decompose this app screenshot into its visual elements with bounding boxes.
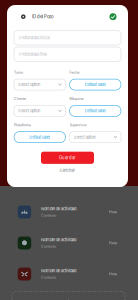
button[interactable]: Default label — [69, 105, 121, 116]
staticText: Cliente — [14, 97, 26, 101]
button[interactable]: Nombre de actividad — [0, 227, 138, 258]
staticText: Profundidad inicial — [19, 35, 50, 40]
staticText: Default label — [85, 82, 106, 87]
button[interactable]: Profundidad final — [14, 47, 121, 61]
staticText: Guardar — [59, 155, 76, 160]
button[interactable]: Nombre de actividad — [0, 196, 138, 227]
button[interactable]: Default label — [14, 132, 65, 143]
button[interactable]: Cancelar — [7, 168, 128, 173]
button[interactable]: Select option — [69, 132, 121, 143]
staticText: Hora — [109, 272, 117, 276]
staticText: Contexto — [41, 213, 56, 218]
staticText: Nombre de actividad — [41, 237, 76, 242]
staticText: Plataforma — [14, 123, 31, 127]
staticText: Profundidad final — [19, 52, 47, 57]
staticText: Hora — [109, 241, 117, 245]
staticText: Fecha — [69, 70, 79, 74]
staticText: Contexto — [41, 275, 56, 280]
staticText: Turno — [14, 70, 23, 74]
button[interactable]: Guardar — [41, 152, 94, 164]
button[interactable]: Default label — [69, 79, 121, 90]
button[interactable]: Profundidad inicial — [14, 30, 121, 45]
staticText: Select option — [18, 82, 40, 87]
staticText: Supervisor — [69, 123, 86, 127]
staticText: Cancelar — [59, 168, 75, 173]
staticText: Select option — [73, 135, 95, 140]
staticText: Select option — [18, 108, 40, 113]
staticText: Máquina — [69, 97, 83, 101]
staticText: Contexto — [41, 244, 56, 249]
staticText: Hora — [109, 210, 117, 214]
button[interactable]: Nombre de actividad — [0, 258, 138, 289]
staticText: Default label — [29, 135, 50, 140]
staticText: ID del Pozo — [32, 14, 54, 19]
button[interactable]: Select option — [14, 79, 65, 90]
staticText: Default label — [85, 108, 106, 113]
staticText: Nombre de actividad — [41, 206, 76, 211]
staticText: Nombre de actividad — [41, 268, 76, 273]
button[interactable]: Select option — [14, 105, 65, 116]
